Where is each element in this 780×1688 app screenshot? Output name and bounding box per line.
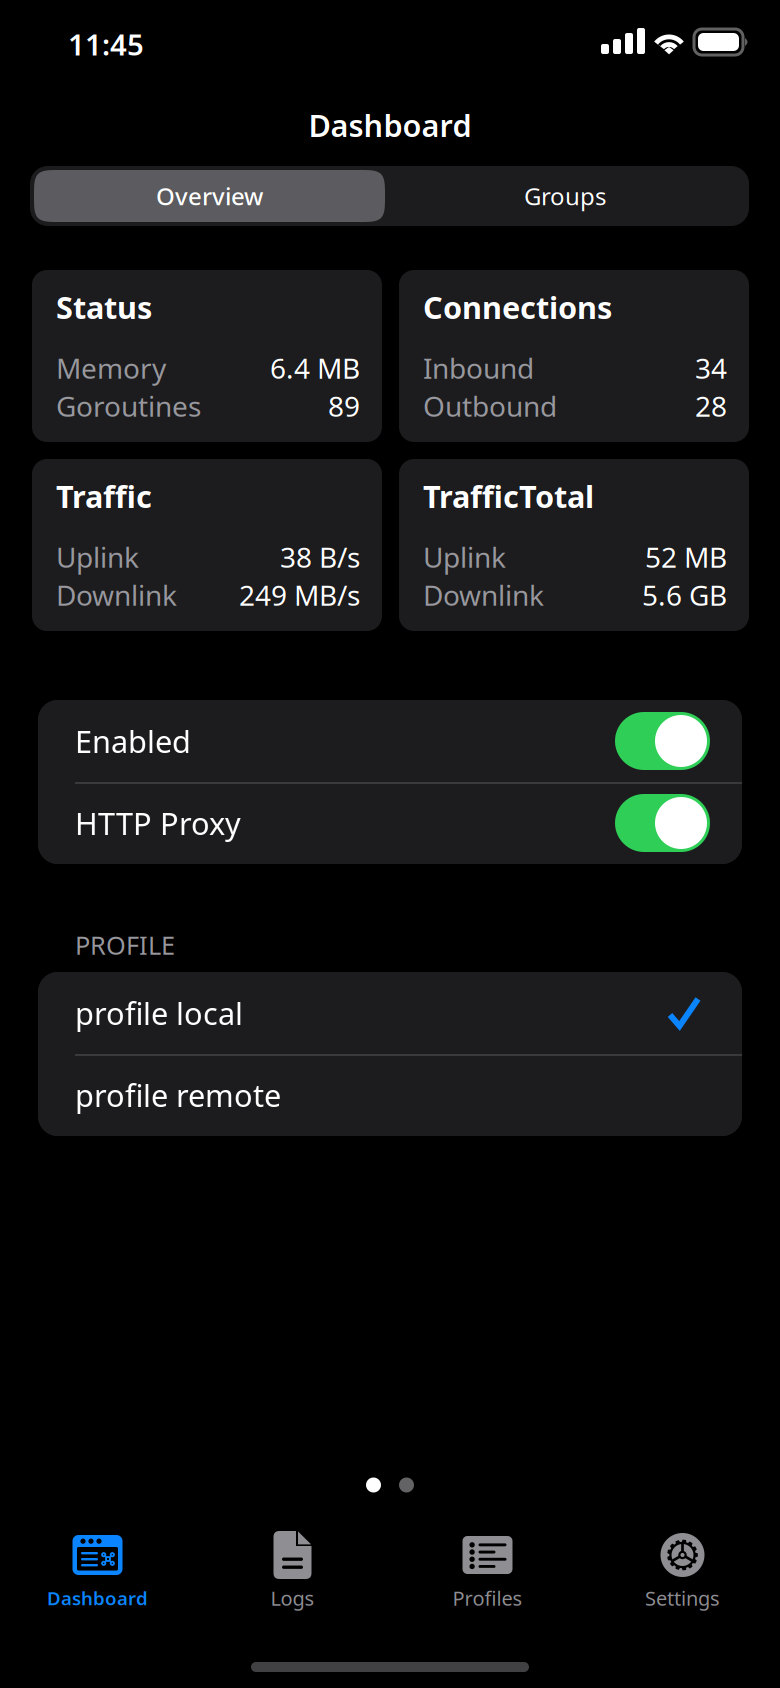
staticText: Downlink <box>423 576 544 614</box>
staticText: Inbound <box>423 349 534 387</box>
button[interactable]: Settings <box>585 1527 780 1627</box>
staticText: 34 <box>695 349 727 387</box>
staticText: Overview <box>156 180 263 212</box>
staticText: Profiles <box>452 1585 522 1611</box>
staticText: profile local <box>75 993 243 1033</box>
staticText: Uplink <box>56 538 139 576</box>
button[interactable]: Overview <box>34 170 385 222</box>
button[interactable]: profile remote <box>38 1054 742 1136</box>
button[interactable]: Enabled <box>38 700 742 782</box>
staticText: Status <box>56 287 152 327</box>
staticText: profile remote <box>75 1075 281 1115</box>
staticText: 6.4 MB <box>270 349 360 387</box>
button[interactable]: Groups <box>385 170 745 222</box>
staticText: Enabled <box>75 721 191 761</box>
button[interactable]: profile local <box>38 972 742 1054</box>
staticText: 28 <box>695 387 727 425</box>
staticText: Memory <box>56 349 166 387</box>
staticText: Uplink <box>423 538 506 576</box>
staticText: TrafficTotal <box>423 476 594 516</box>
staticText: Dashboard <box>47 1586 148 1610</box>
staticText: HTTP Proxy <box>75 803 241 843</box>
staticText: 11:45 <box>68 24 144 63</box>
staticText: Connections <box>423 287 612 327</box>
button[interactable]: Profiles <box>390 1527 585 1627</box>
staticText: Traffic <box>56 476 152 516</box>
staticText: 249 MB/s <box>239 576 360 614</box>
button[interactable]: HTTP Proxy <box>38 782 742 864</box>
button[interactable]: Logs <box>195 1527 390 1627</box>
staticText: Outbound <box>423 387 557 425</box>
staticText: Downlink <box>56 576 177 614</box>
staticText: 52 MB <box>645 538 727 576</box>
staticText: 5.6 GB <box>642 576 727 614</box>
staticText: Logs <box>270 1585 314 1611</box>
button[interactable]: Dashboard <box>0 1527 195 1627</box>
staticText: 38 B/s <box>280 538 360 576</box>
staticText: Settings <box>645 1585 720 1611</box>
staticText: Dashboard <box>308 105 471 145</box>
staticText: Goroutines <box>56 387 201 425</box>
staticText: PROFILE <box>75 928 175 962</box>
staticText: Groups <box>524 180 606 212</box>
staticText: 89 <box>328 387 360 425</box>
